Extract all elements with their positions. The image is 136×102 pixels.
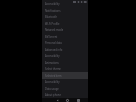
button[interactable]: Accessibility <box>42 52 88 59</box>
button[interactable]: BitTorrent <box>42 33 88 40</box>
staticText: BitTorrent <box>45 35 58 39</box>
staticText: Bluetooth <box>45 15 58 19</box>
button[interactable]: Wi-Fi Profile <box>42 20 88 27</box>
button[interactable]: Network mode <box>42 26 88 33</box>
button[interactable]: Home <box>65 98 70 102</box>
staticText: Accessibility <box>45 2 60 6</box>
button[interactable]: Recent apps <box>76 98 81 102</box>
button[interactable]: Personal data <box>42 39 88 46</box>
button[interactable]: Back <box>55 98 60 102</box>
staticText: Wi-Fi Profile <box>45 22 60 26</box>
button[interactable]: Selected item <box>42 72 88 79</box>
button[interactable]: Bluetooth <box>42 13 88 20</box>
button[interactable]: Advanced info <box>42 46 88 53</box>
staticText: Data usage <box>45 87 59 91</box>
button[interactable]: About phone <box>42 91 88 98</box>
button[interactable]: Accessibility <box>42 0 88 7</box>
button[interactable]: Select theme <box>42 65 88 72</box>
staticText: Network mode <box>45 28 64 32</box>
staticText: Select theme <box>45 67 61 71</box>
staticText: Accessibility <box>45 80 60 84</box>
button[interactable]: Animations <box>42 59 88 66</box>
staticText: Notifications <box>45 9 61 13</box>
button[interactable]: Accessibility <box>42 78 88 85</box>
button[interactable]: Notifications <box>42 7 88 14</box>
staticText: Personal data <box>45 41 62 45</box>
staticText: Animations <box>45 61 59 65</box>
staticText: About phone <box>45 93 61 97</box>
staticText: Advanced info <box>45 48 63 52</box>
staticText: Accessibility <box>45 54 60 58</box>
button[interactable]: Data usage <box>42 85 88 92</box>
staticText: Selected item <box>45 74 62 78</box>
